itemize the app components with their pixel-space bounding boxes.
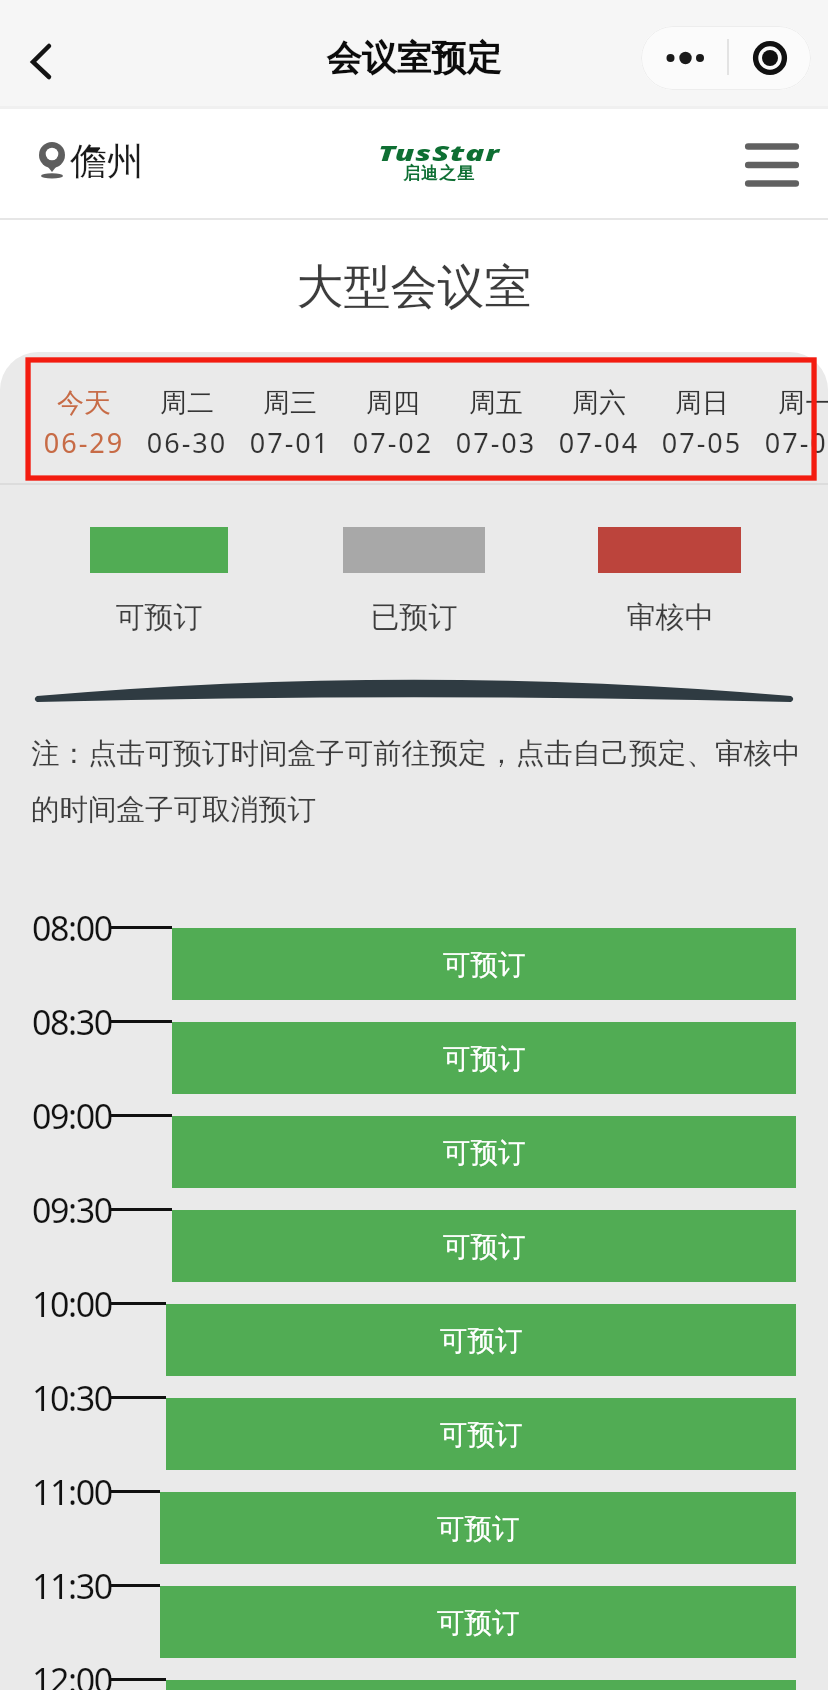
staticText: 06-29 <box>33 424 135 470</box>
staticText: 09:00 <box>32 1093 152 1151</box>
staticText: 07-01 <box>239 424 341 470</box>
staticText: 周二 <box>136 386 238 432</box>
button[interactable]: 今天 <box>33 354 135 480</box>
staticText: 可预订 <box>440 1418 523 1453</box>
staticText: 可预订 <box>440 1324 523 1359</box>
staticText: 12:00 <box>32 1657 152 1690</box>
button[interactable]: 可预订 <box>166 1398 796 1470</box>
button[interactable]: 可预订 <box>160 1492 796 1564</box>
button[interactable]: 可预订 <box>160 1586 796 1658</box>
button[interactable]: 儋州 <box>24 130 154 192</box>
staticText: 可预订 <box>443 1042 526 1077</box>
button[interactable]: 可预订 <box>172 1210 796 1282</box>
button[interactable]: 周三 <box>239 354 341 480</box>
staticText: 启迪之星 <box>239 163 639 192</box>
staticText: 10:00 <box>32 1281 152 1339</box>
staticText: 大型会议室 <box>14 258 814 338</box>
staticText: 08:30 <box>32 999 152 1057</box>
staticText: 06-30 <box>136 424 238 470</box>
staticText: 可预订 <box>39 599 279 648</box>
button[interactable]: 周六 <box>548 354 650 480</box>
staticText: 审核中 <box>550 599 790 648</box>
button[interactable]: Open menu <box>730 128 814 204</box>
staticText: 周五 <box>445 386 547 432</box>
staticText: 可预订 <box>443 1230 526 1265</box>
staticText: 今天 <box>33 386 135 432</box>
staticText: 07-03 <box>445 424 547 470</box>
button[interactable]: Back <box>14 28 82 96</box>
staticText: 可预订 <box>443 948 526 983</box>
staticText: 可预订 <box>443 1136 526 1171</box>
staticText: 注：点击可预订时间盒子可前往预定，点击自己预定、审核中 <box>31 736 828 784</box>
staticText: 已预订 <box>294 599 534 648</box>
staticText: 周一 <box>754 386 828 432</box>
staticText: 07-04 <box>548 424 650 470</box>
button[interactable]: 可预订 <box>166 1304 796 1376</box>
staticText: 可预订 <box>437 1606 520 1641</box>
staticText: 10:30 <box>32 1375 152 1433</box>
staticText: 08:00 <box>32 905 152 963</box>
staticText: 周日 <box>651 386 753 432</box>
staticText: 会议室预定 <box>14 36 814 96</box>
button[interactable]: 周四 <box>342 354 444 480</box>
button[interactable]: 可预订 <box>172 928 796 1000</box>
staticText: TusStar <box>139 139 739 175</box>
button[interactable]: 周二 <box>136 354 238 480</box>
staticText: 11:30 <box>32 1563 152 1621</box>
button[interactable]: 周五 <box>445 354 547 480</box>
button[interactable]: More options and close <box>641 26 811 90</box>
staticText: 的时间盒子可取消预订 <box>31 792 828 840</box>
staticText: 07-02 <box>342 424 444 470</box>
staticText: 07-05 <box>651 424 753 470</box>
staticText: 09:30 <box>32 1187 152 1245</box>
staticText: 07-06 <box>754 424 828 470</box>
staticText: 周三 <box>239 386 341 432</box>
staticText: 11:00 <box>32 1469 152 1527</box>
button[interactable]: 可预订 <box>172 1022 796 1094</box>
staticText: 可预订 <box>437 1512 520 1547</box>
button[interactable]: 可预订 <box>172 1116 796 1188</box>
staticText: 儋州 <box>70 138 200 200</box>
button[interactable]: 周日 <box>651 354 753 480</box>
staticText: 周四 <box>342 386 444 432</box>
button[interactable]: 周一 <box>754 354 828 480</box>
staticText: 周六 <box>548 386 650 432</box>
